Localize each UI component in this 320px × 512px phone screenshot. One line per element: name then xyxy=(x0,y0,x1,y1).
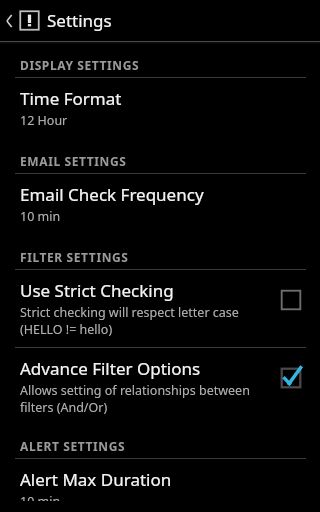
button[interactable]: Alert Max Duration xyxy=(0,459,320,512)
staticText: Strict checking will respect letter case… xyxy=(20,304,239,337)
staticText: Settings xyxy=(47,9,112,32)
other: Unchecked xyxy=(276,285,306,315)
staticText: Time Format xyxy=(20,87,122,110)
button[interactable]: Email Check Frequency xyxy=(0,174,320,236)
staticText: 12 Hour xyxy=(20,112,68,129)
staticText: 10 min xyxy=(20,208,61,225)
staticText: Advance Filter Options xyxy=(20,357,201,380)
staticText: Email Check Frequency xyxy=(20,183,204,206)
button[interactable]: Use Strict Checking xyxy=(0,270,320,347)
button[interactable]: Time Format xyxy=(0,78,320,140)
button[interactable]: Navigate up xyxy=(0,0,42,41)
staticText: ALERT SETTINGS xyxy=(20,438,126,454)
staticText: DISPLAY SETTINGS xyxy=(20,57,140,73)
other: Checked xyxy=(276,363,306,393)
button[interactable]: Advance Filter Options xyxy=(0,348,320,425)
staticText: Alert Max Duration xyxy=(20,468,172,491)
staticText: Use Strict Checking xyxy=(20,279,174,302)
staticText: EMAIL SETTINGS xyxy=(20,153,127,169)
staticText: FILTER SETTINGS xyxy=(20,249,129,265)
staticText: 10 min xyxy=(20,493,61,501)
staticText: Allows setting of relationships between … xyxy=(20,382,250,415)
